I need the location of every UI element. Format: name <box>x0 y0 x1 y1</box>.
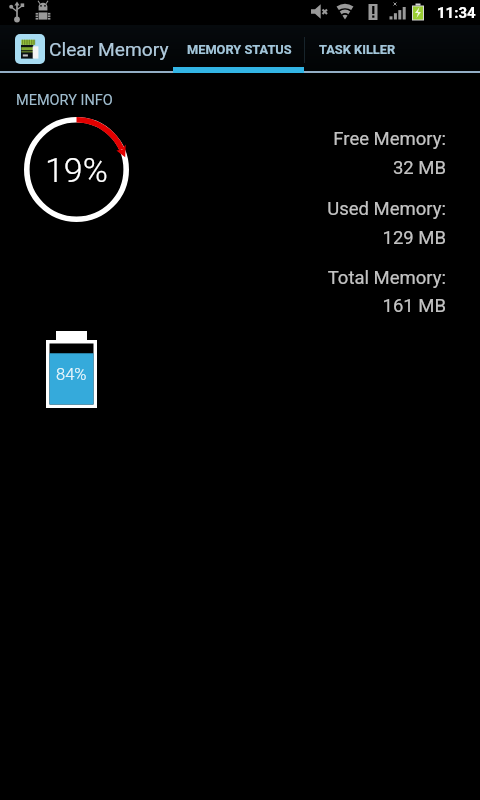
staticText: MEMORY STATUS <box>187 42 292 57</box>
other: Clear Memory app icon <box>15 34 45 64</box>
staticText: 129 MB <box>382 227 446 249</box>
staticText: 11:34 <box>437 4 476 22</box>
staticText: Total Memory: <box>327 267 446 289</box>
staticText: Clear Memory <box>49 38 169 61</box>
staticText: 161 MB <box>382 295 446 317</box>
button[interactable]: Memory usage 19 percent <box>24 117 129 222</box>
button[interactable]: Clear Memory app icon <box>0 25 179 73</box>
staticText: 32 MB <box>392 157 446 179</box>
button[interactable]: Battery 84 percent <box>46 331 97 408</box>
button[interactable]: MEMORY STATUS <box>173 25 305 73</box>
staticText: 19% <box>45 150 108 190</box>
staticText: MEMORY INFO <box>16 92 113 109</box>
staticText: TASK KILLER <box>319 42 396 57</box>
staticText: 84% <box>56 365 87 384</box>
staticText: Used Memory: <box>327 198 446 220</box>
button[interactable]: TASK KILLER <box>306 25 408 73</box>
staticText: Free Memory: <box>333 128 446 150</box>
